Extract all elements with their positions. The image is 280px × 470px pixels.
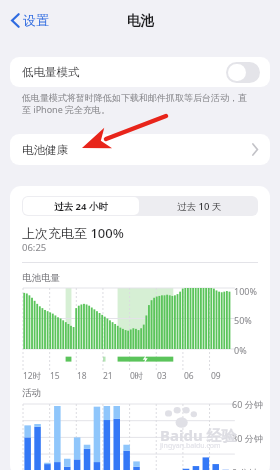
button[interactable]: 低电量模式: [10, 57, 270, 87]
staticText: 06: [184, 370, 194, 382]
button[interactable]: 过去 24 小时: [22, 196, 140, 216]
staticText: 12时: [23, 370, 42, 382]
staticText: 电池电量: [22, 272, 60, 284]
staticText: 0 分钟: [232, 466, 258, 470]
staticText: 电池: [127, 12, 154, 29]
staticText: 09: [211, 370, 221, 382]
staticText: 18: [77, 370, 87, 382]
button[interactable]: Low Power Mode toggle: [226, 62, 260, 83]
staticText: 过去 24 小时: [54, 200, 108, 213]
staticText: 03: [157, 370, 167, 382]
button[interactable]: 设置: [8, 8, 52, 32]
staticText: Baidu 经验: [160, 425, 237, 445]
staticText: 低电量模式: [22, 65, 80, 79]
staticText: 设置: [23, 12, 49, 28]
staticText: 60 分钟: [232, 398, 263, 410]
staticText: 100%: [234, 285, 257, 297]
staticText: 50%: [234, 314, 252, 326]
staticText: 上次充电至 100%: [22, 224, 124, 242]
button[interactable]: 电池健康: [10, 134, 270, 165]
button[interactable]: 过去 10 天: [140, 196, 258, 216]
staticText: 0时: [130, 370, 144, 382]
staticText: 过去 10 天: [177, 200, 222, 213]
staticText: 15: [50, 370, 60, 382]
staticText: 06:25: [22, 241, 47, 254]
staticText: 21: [103, 370, 113, 382]
staticText: 30 分钟: [232, 432, 263, 444]
staticText: 活动: [22, 387, 41, 399]
staticText: 低电量模式将暂时降低如下载和邮件抓取等后台活动，直 至 iPhone 完全充电。: [22, 92, 262, 116]
staticText: jingyan.baidu.com: [160, 441, 221, 451]
staticText: 0%: [234, 344, 247, 356]
staticText: 电池健康: [22, 143, 68, 157]
